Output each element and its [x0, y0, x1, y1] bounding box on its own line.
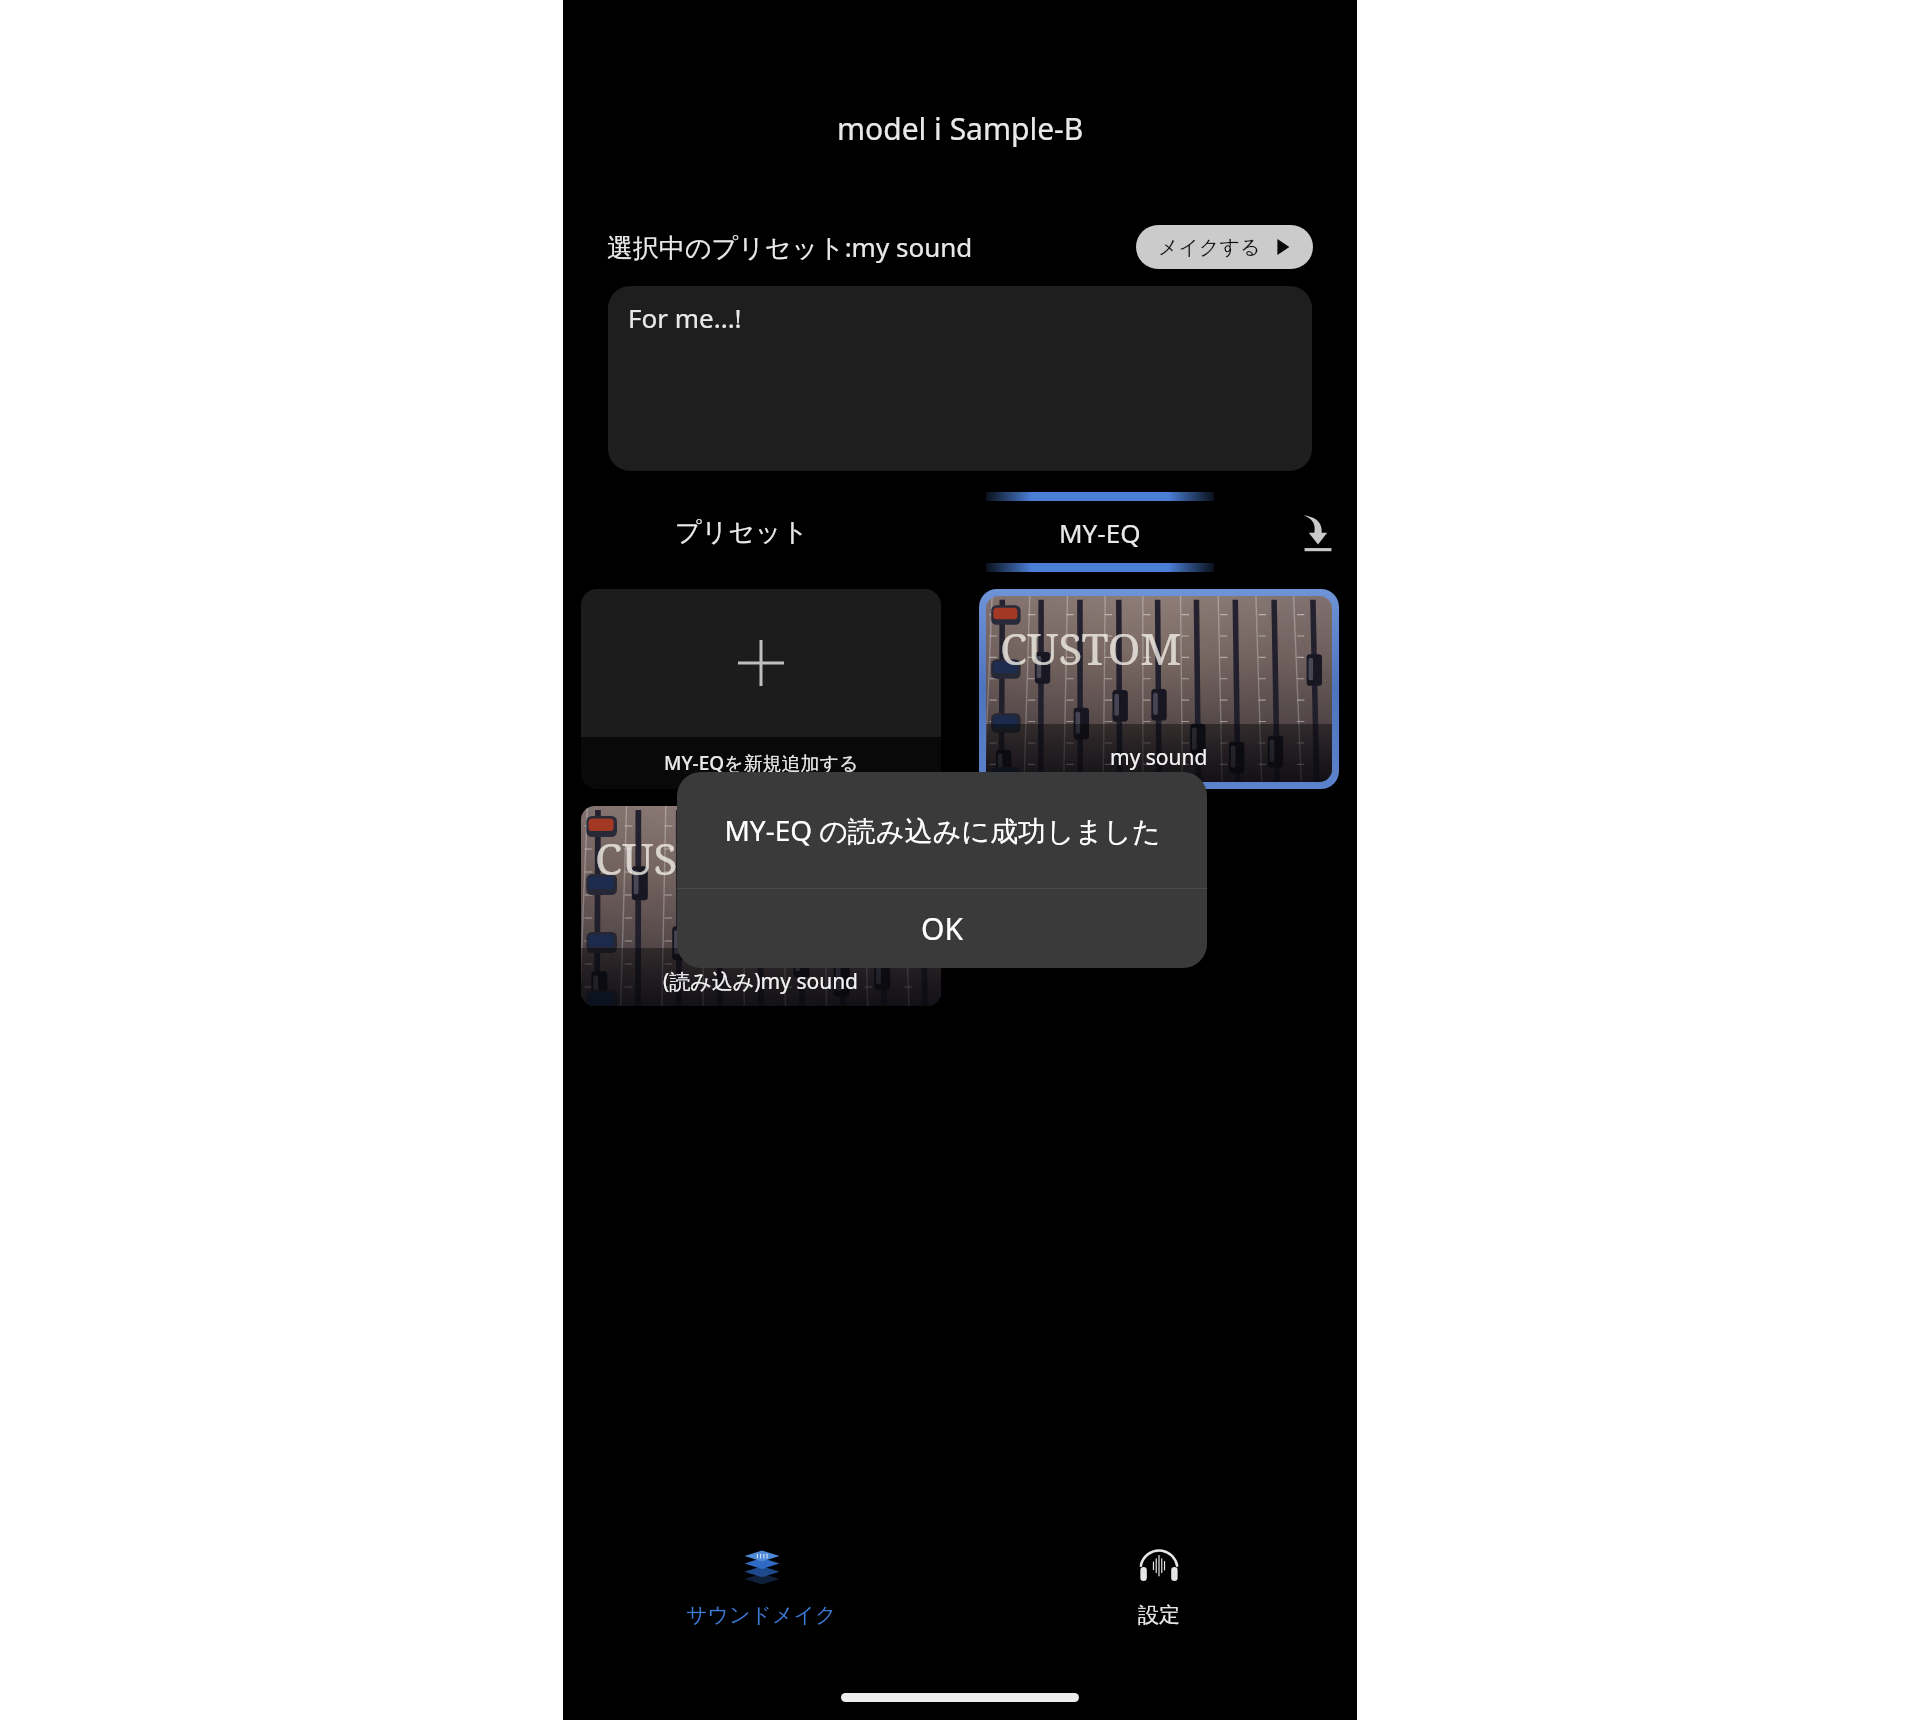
staticText: サウンドメイク	[686, 1602, 837, 1628]
button[interactable]: Download	[1279, 488, 1357, 576]
staticText: MY-EQ の読み込みに成功しました	[724, 811, 1161, 849]
staticText: OK	[921, 908, 963, 949]
button[interactable]: サウンドメイク	[563, 1542, 960, 1628]
staticText: For me...!	[628, 300, 742, 335]
staticText: my sound	[1110, 743, 1208, 772]
button[interactable]: MY-EQを新規追加する	[581, 589, 941, 789]
staticText: CUSTOM	[1000, 618, 1182, 678]
button[interactable]: CUSTOM	[986, 596, 1332, 782]
staticText: 設定	[1138, 1602, 1180, 1628]
staticText: MY-EQを新規追加する	[664, 750, 859, 776]
button[interactable]: メイクする	[1136, 225, 1313, 269]
button[interactable]: プリセット	[563, 488, 921, 576]
staticText: プリセット	[675, 516, 809, 549]
staticText: メイクする	[1158, 235, 1261, 260]
button[interactable]: CUSTOM	[581, 806, 941, 1006]
button[interactable]: 設定	[960, 1542, 1357, 1628]
button[interactable]: MY-EQ	[921, 488, 1279, 576]
staticText: 選択中のプリセット:my sound	[607, 229, 973, 265]
staticText: MY-EQ	[1059, 515, 1141, 550]
staticText: CUSTOM	[595, 828, 777, 888]
button[interactable]: OK	[677, 889, 1207, 968]
staticText: (読み込み)my sound	[663, 967, 859, 996]
button[interactable]: For me...!	[608, 286, 1312, 471]
staticText: model i Sample-B	[837, 108, 1084, 149]
